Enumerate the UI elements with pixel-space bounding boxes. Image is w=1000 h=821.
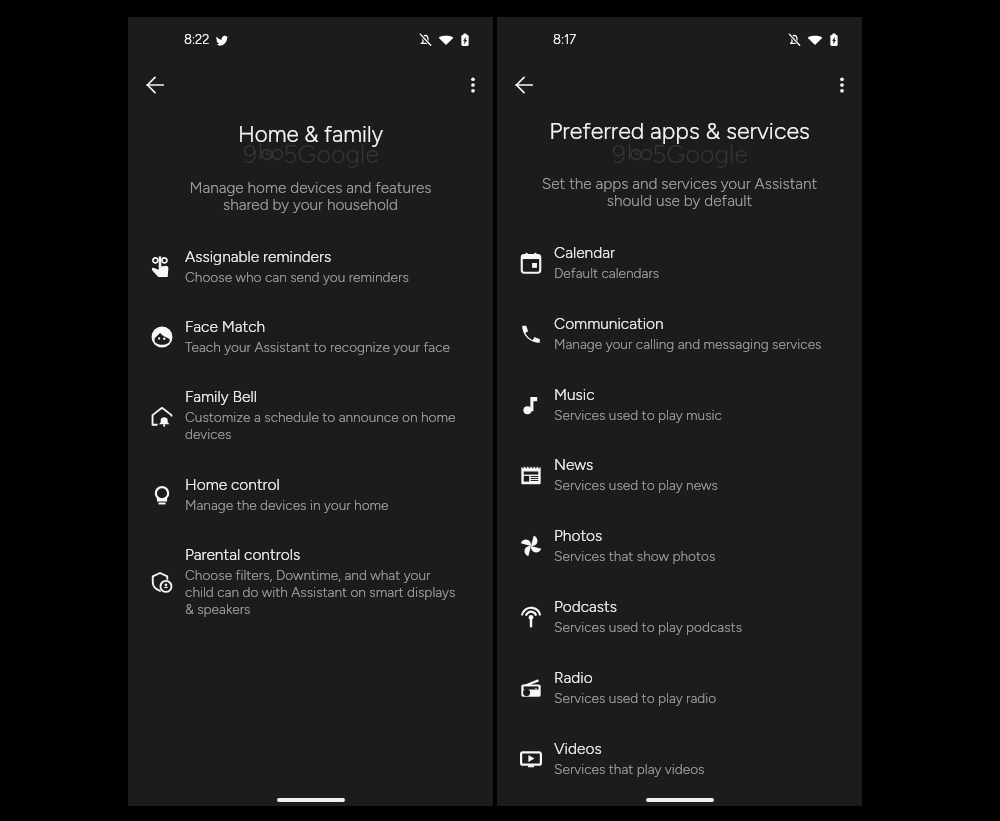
button[interactable]: Photos [497,526,862,564]
staticText: Services that play videos [554,761,705,777]
staticText: Parental controls [185,545,301,564]
staticText: Calendar [554,243,615,262]
button[interactable]: Communication [497,314,862,352]
button[interactable]: Music [497,385,862,423]
staticText: Choose who can send you reminders [185,269,409,285]
staticText: Services used to play news [554,477,718,493]
button[interactable]: Back [136,66,173,103]
button[interactable]: Back [505,66,542,103]
staticText: Manage your calling and messaging servic… [554,336,822,352]
staticText: Manage the devices in your home [185,497,389,513]
staticText: Services used to play podcasts [554,619,743,635]
staticText: Communication [554,314,664,333]
button[interactable]: Radio [497,668,862,706]
button[interactable]: Parental controls [128,545,493,618]
button[interactable]: More options [823,66,860,103]
staticText: Home & family [128,121,493,148]
staticText: Customize a schedule to announce on home… [185,409,456,443]
button[interactable]: News [497,455,862,493]
staticText: 5Google [652,139,748,169]
button[interactable]: Calendar [497,243,862,281]
staticText: News [554,455,594,474]
staticText: 9 [612,139,627,169]
button[interactable]: Family Bell [128,387,493,443]
staticText: Podcasts [554,597,617,616]
staticText: 8:17 [553,32,577,48]
button[interactable]: Home control [128,475,493,513]
staticText: 8:22 [184,32,210,48]
staticText: Preferred apps & services [497,117,862,145]
staticText: Radio [554,668,593,687]
staticText: Default calendars [554,265,660,281]
staticText: Family Bell [185,387,257,406]
staticText: Services that show photos [554,548,716,564]
staticText: Videos [554,739,602,758]
staticText: Teach your Assistant to recognize your f… [185,339,451,355]
staticText: Choose filters, Downtime, and what your … [185,567,456,618]
button[interactable]: More options [454,66,491,103]
staticText: Face Match [185,317,266,336]
button[interactable]: Videos [497,739,862,777]
staticText: Set the apps and services your Assistant… [497,174,862,210]
button[interactable]: Assignable reminders [128,247,493,285]
staticText: Manage home devices and features shared … [128,178,493,214]
staticText: Services used to play music [554,407,722,423]
staticText: Assignable reminders [185,247,332,266]
button[interactable]: Face Match [128,317,493,355]
staticText: 9 [243,139,258,169]
button[interactable]: Podcasts [497,597,862,635]
staticText: Photos [554,526,603,545]
staticText: Home control [185,475,280,494]
staticText: Music [554,385,595,404]
staticText: 5Google [283,139,379,169]
staticText: Services used to play radio [554,690,717,706]
